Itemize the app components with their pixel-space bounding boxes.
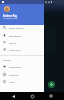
button[interactable]: Help — [0, 78, 44, 85]
staticText: Andrew Ray — [3, 14, 18, 17]
staticText: Bookmarks — [9, 34, 22, 37]
button[interactable]: Quick Search — [0, 24, 44, 31]
button[interactable]: Create — [48, 81, 55, 88]
staticText: Settings — [9, 73, 19, 76]
staticText: Filters — [9, 41, 16, 44]
button[interactable]: Settings — [0, 71, 44, 78]
button[interactable]: Filters — [0, 39, 44, 46]
button[interactable]: Bookmarks — [0, 32, 44, 39]
staticText: Help — [9, 80, 15, 83]
button[interactable]: Downloads — [0, 63, 44, 70]
button[interactable]: Account — [4, 6, 10, 12]
staticText: Downloads — [9, 65, 22, 68]
button[interactable]: Back — [7, 92, 19, 100]
staticText: System — [3, 58, 12, 61]
staticText: Favourites — [9, 48, 21, 51]
staticText: Quick Search — [9, 26, 24, 29]
button[interactable]: Home — [26, 92, 38, 100]
button[interactable]: Favourites — [0, 46, 44, 53]
button[interactable]: Recents — [45, 92, 57, 100]
staticText: a.ray@mail.com — [3, 17, 18, 20]
